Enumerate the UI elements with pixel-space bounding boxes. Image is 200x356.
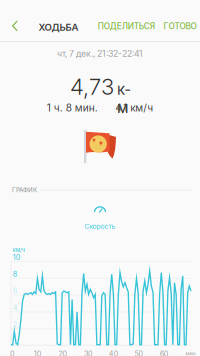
staticText: 2 — [13, 320, 17, 329]
staticText: км/ч — [13, 247, 25, 253]
staticText: 4 — [13, 303, 18, 312]
staticText: 40 — [109, 349, 119, 356]
staticText: 8 — [13, 270, 17, 278]
staticText: 1 ч. 8 мин. — [47, 102, 98, 114]
staticText: 6 — [13, 287, 17, 295]
staticText: ХОДЬБА — [38, 21, 78, 33]
staticText: 30 — [84, 349, 93, 356]
staticText: ГРАФИК — [12, 186, 37, 194]
staticText: 50 — [134, 349, 143, 356]
button[interactable]: ПОДЕЛИТЬСЯ — [94, 10, 159, 42]
staticText: Скорость — [84, 222, 115, 230]
button[interactable]: ГОТОВО — [159, 10, 200, 42]
staticText: ГОТОВО — [163, 21, 196, 31]
staticText: 10 — [13, 253, 21, 262]
staticText: 20 — [59, 349, 68, 356]
staticText: 60 — [160, 349, 169, 356]
staticText: 0 — [10, 349, 15, 356]
staticText: чт, 7 дек., 21:32-22:41 — [57, 48, 143, 59]
staticText: ПОДЕЛИТЬСЯ — [98, 21, 155, 31]
staticText: 10 — [34, 349, 42, 356]
staticText: 4,1 км/ч — [115, 102, 153, 114]
staticText: км — [117, 80, 130, 116]
staticText: 4,73 — [70, 73, 114, 100]
staticText: мин — [185, 350, 195, 356]
button[interactable]: Назад — [0, 0, 31, 41]
